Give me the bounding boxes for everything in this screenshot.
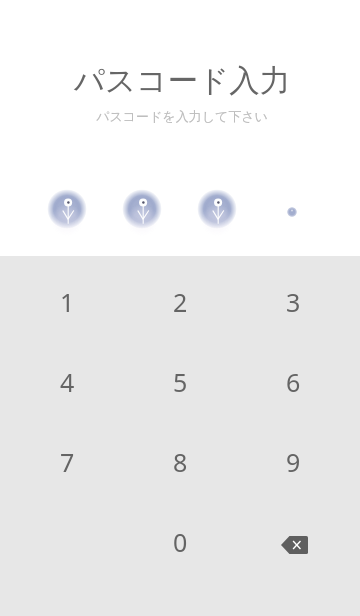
- staticText: 2: [173, 285, 188, 319]
- other: Entered digit: [39, 181, 95, 237]
- button[interactable]: 8: [124, 422, 237, 502]
- other: Backspace: [281, 536, 308, 554]
- button[interactable]: 0: [124, 502, 237, 582]
- button[interactable]: 5: [124, 342, 237, 422]
- button[interactable]: Backspace: [237, 502, 350, 582]
- staticText: 7: [60, 445, 75, 479]
- other: Entered digit: [189, 181, 245, 237]
- staticText: 6: [286, 365, 301, 399]
- button[interactable]: 6: [237, 342, 350, 422]
- button[interactable]: 9: [237, 422, 350, 502]
- other: Empty digit: [264, 181, 320, 237]
- staticText: 5: [173, 365, 188, 399]
- staticText: 0: [173, 525, 188, 559]
- staticText: 1: [60, 285, 75, 319]
- staticText: 3: [286, 285, 301, 319]
- staticText: 4: [60, 365, 75, 399]
- button[interactable]: 1: [10, 262, 124, 342]
- staticText: 9: [286, 445, 301, 479]
- staticText: 8: [173, 445, 188, 479]
- staticText: パスコード入力: [2, 62, 360, 100]
- button[interactable]: 3: [237, 262, 350, 342]
- other: Entered digit: [114, 181, 170, 237]
- button[interactable]: 7: [10, 422, 124, 502]
- button[interactable]: 2: [124, 262, 237, 342]
- staticText: パスコードを入力して下さい: [2, 108, 360, 124]
- button[interactable]: 4: [10, 342, 124, 422]
